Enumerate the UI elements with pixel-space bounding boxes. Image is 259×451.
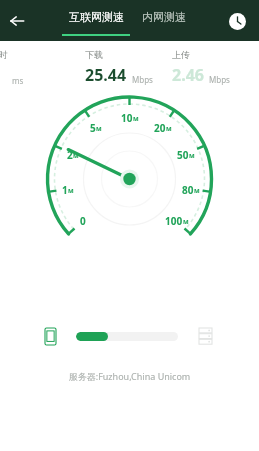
button[interactable]: 互联网测速 [69, 0, 124, 34]
staticText: 25.44 [85, 64, 127, 86]
staticText: 互联网测速 [69, 10, 124, 24]
staticText: 2 [67, 148, 73, 160]
staticText: M [183, 218, 187, 226]
staticText: 延时 [0, 49, 8, 60]
staticText: 0 [80, 214, 86, 226]
button[interactable]: Device [40, 326, 60, 346]
staticText: M [194, 187, 200, 195]
button[interactable]: 内网测速 [142, 0, 186, 34]
button[interactable]: History [225, 9, 249, 33]
staticText: 20 [154, 121, 166, 133]
staticText: 服务器:Fuzhou,China Unicom [0, 370, 259, 382]
staticText: 100 [165, 214, 183, 226]
staticText: M [166, 125, 172, 133]
staticText: 50 [177, 148, 189, 160]
staticText: ms [12, 75, 24, 86]
button[interactable]: Server [194, 325, 216, 347]
staticText: Mbps [132, 74, 153, 85]
staticText: M [68, 187, 74, 195]
staticText: M [189, 152, 195, 160]
staticText: 上传 [172, 49, 190, 60]
staticText: 2.46 [172, 64, 204, 86]
staticText: M [73, 152, 79, 160]
button[interactable]: Back [0, 4, 34, 38]
staticText: 80 [182, 183, 194, 195]
staticText: Mbps [209, 74, 230, 85]
staticText: M [96, 125, 102, 133]
staticText: 内网测速 [142, 10, 186, 24]
staticText: 5 [90, 121, 96, 133]
staticText: 下载 [85, 49, 103, 60]
staticText: 1 [62, 183, 68, 195]
staticText: 10 [121, 111, 133, 123]
staticText: M [133, 115, 139, 123]
